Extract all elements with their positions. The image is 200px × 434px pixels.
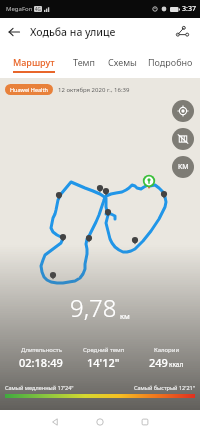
staticText: 4G [35,6,41,12]
button[interactable]: KM [172,156,194,178]
button[interactable]: Слои карты [172,128,194,150]
staticText: Темп [73,56,95,68]
button[interactable]: Схемы [108,56,137,73]
button[interactable]: Последние приложения [133,410,157,434]
button[interactable]: Подробно [148,56,193,73]
staticText: MegaFon [6,5,33,13]
staticText: Калории [154,346,180,354]
button[interactable]: Назад [43,410,67,434]
staticText: км [120,311,130,321]
staticText: 14'12" [87,355,120,370]
staticText: Huawei Health [10,86,48,93]
staticText: 12 октября 2020 г., 16:39 [58,86,130,94]
staticText: Схемы [108,56,137,68]
staticText: Средний темп [83,346,125,354]
staticText: Подробно [148,56,193,68]
button[interactable]: Назад [0,18,27,45]
staticText: ккал [169,360,184,369]
staticText: Ходьба на улице [30,25,116,39]
button[interactable]: Маршрут [169,18,196,45]
staticText: 3:37 [182,4,196,14]
staticText: Маршрут [13,56,55,68]
button[interactable]: Темп [73,56,95,73]
button[interactable]: Моё местоположение [172,100,194,122]
staticText: Длительность [21,346,62,354]
staticText: 02:18:49 [19,355,63,370]
button[interactable]: Главный экран [88,410,112,434]
staticText: KM [178,162,189,172]
button[interactable]: Huawei Health [5,84,53,95]
staticText: 9,78 [70,291,117,324]
staticText: Самый быстрый 12'21" [134,384,195,391]
staticText: 249 [149,355,168,370]
staticText: Самый медленный 17'24" [5,384,74,391]
button[interactable]: Маршрут [13,56,55,73]
